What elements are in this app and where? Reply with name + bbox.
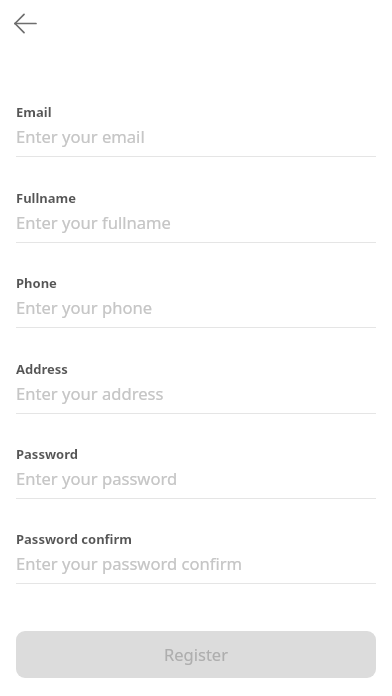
staticText: Enter your password confirm [16, 552, 243, 575]
staticText: Enter your fullname [16, 211, 171, 234]
staticText: Address [16, 360, 68, 378]
staticText: Fullname [16, 189, 77, 207]
staticText: Enter your address [16, 382, 164, 405]
button[interactable]: Email [16, 103, 376, 157]
staticText: Enter your phone [16, 296, 153, 319]
button[interactable]: Phone [16, 274, 376, 328]
button[interactable]: Password confirm [16, 530, 376, 584]
staticText: Email [16, 103, 52, 121]
button[interactable]: Password [16, 445, 376, 499]
button[interactable]: Back [4, 2, 46, 44]
button[interactable]: Fullname [16, 189, 376, 243]
staticText: Enter your email [16, 125, 145, 148]
staticText: Phone [16, 274, 57, 292]
staticText: Password [16, 445, 78, 463]
staticText: Register [164, 643, 228, 665]
button[interactable]: Address [16, 360, 376, 414]
staticText: Enter your password [16, 467, 178, 490]
staticText: Password confirm [16, 530, 132, 548]
button[interactable]: Register [16, 631, 376, 678]
